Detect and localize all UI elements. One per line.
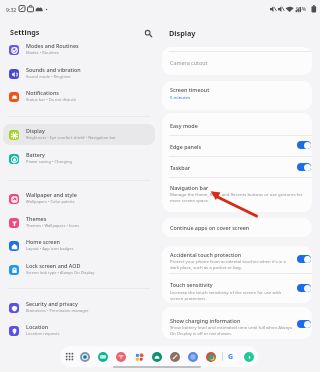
- staticText: Manage the Home, Back, and Recents butto…: [170, 191, 308, 203]
- button[interactable]: Google: [226, 352, 236, 362]
- staticText: Power saving • Charging: [26, 159, 72, 164]
- staticText: Brightness • Eye comfort shield • Naviga…: [26, 135, 116, 140]
- button[interactable]: App 7: [188, 352, 198, 362]
- staticText: 93%: [296, 6, 306, 13]
- staticText: 5 minutes: [170, 94, 191, 100]
- staticText: Security and privacy: [26, 300, 78, 307]
- staticText: Home screen: [26, 238, 60, 245]
- button[interactable]: Battery: [3, 148, 155, 169]
- staticText: Touch sensitivity: [170, 281, 213, 288]
- staticText: Display: [169, 28, 196, 38]
- staticText: Battery: [26, 151, 45, 158]
- button[interactable]: Modes and Routines: [3, 39, 155, 60]
- button[interactable]: App 5: [152, 352, 162, 362]
- staticText: Display: [26, 127, 45, 134]
- staticText: Notifications: [26, 89, 59, 96]
- staticText: Sound mode • Ringtone: [26, 74, 71, 79]
- staticText: Settings: [10, 27, 40, 37]
- staticText: Themes • Wallpapers • Icons: [26, 223, 80, 228]
- button[interactable]: App 6: [170, 352, 180, 362]
- staticText: Edge panels: [170, 143, 202, 150]
- staticText: Easy mode: [170, 122, 198, 129]
- staticText: Modes and Routines: [26, 42, 79, 49]
- staticText: Location: [26, 323, 49, 330]
- button[interactable]: Search: [140, 25, 156, 41]
- button[interactable]: Home screen: [3, 235, 155, 256]
- button[interactable]: Easy mode: [162, 113, 312, 212]
- staticText: Screen lock type • Always On Display: [26, 270, 95, 275]
- button[interactable]: Display: [3, 124, 155, 145]
- staticText: Show battery level and estimated time un…: [170, 324, 294, 336]
- staticText: Sounds and vibration: [26, 66, 81, 73]
- staticText: 9:32: [6, 6, 17, 13]
- button[interactable]: Wallpaper and style: [3, 188, 155, 209]
- button[interactable]: Screen timeout: [162, 81, 312, 110]
- button[interactable]: App 4: [134, 352, 144, 362]
- button[interactable]: Lock screen and AOD: [3, 259, 155, 280]
- button[interactable]: Location: [3, 320, 155, 341]
- staticText: Taskbar: [170, 164, 191, 171]
- button[interactable]: Downloads: [244, 352, 254, 362]
- button[interactable]: Show charging information: [162, 307, 312, 339]
- button[interactable]: Toggle: [297, 255, 311, 263]
- button[interactable]: App 2: [98, 352, 108, 362]
- staticText: Biometrics • Permission manager: [26, 308, 89, 313]
- staticText: Screen timeout: [170, 86, 210, 93]
- button[interactable]: Continue apps on cover screen: [162, 218, 312, 237]
- staticText: Camera cutout: [170, 59, 208, 66]
- button[interactable]: Toggle: [297, 284, 311, 292]
- staticText: Layout • App icon badges: [26, 246, 74, 251]
- button[interactable]: Notifications: [3, 86, 155, 107]
- staticText: Show charging information: [170, 317, 241, 324]
- button[interactable]: Toggle: [297, 141, 311, 149]
- staticText: Accidental touch protection: [170, 251, 242, 258]
- button[interactable]: Security and privacy: [3, 297, 155, 318]
- button[interactable]: App 8: [206, 352, 216, 362]
- staticText: Location requests: [26, 331, 60, 336]
- staticText: Increase the touch sensitivity of the sc…: [170, 289, 294, 301]
- button[interactable]: Toggle: [297, 163, 311, 171]
- staticText: Status bar • Do not disturb: [26, 97, 76, 102]
- staticText: Wallpaper and style: [26, 191, 77, 198]
- button[interactable]: Sounds and vibration: [3, 63, 155, 84]
- button[interactable]: Toggle: [297, 320, 311, 328]
- staticText: Modes • Routines: [26, 50, 59, 55]
- button[interactable]: App 3: [116, 352, 126, 362]
- staticText: Navigation bar: [170, 184, 209, 191]
- staticText: Protect your phone from accidental touch…: [170, 258, 294, 270]
- staticText: Wallpapers • Color palette: [26, 199, 75, 204]
- button[interactable]: Accidental touch protection: [162, 246, 312, 303]
- staticText: Lock screen and AOD: [26, 262, 81, 269]
- staticText: Continue apps on cover screen: [170, 224, 250, 231]
- button[interactable]: Themes: [3, 212, 155, 233]
- button[interactable]: App 1: [80, 352, 90, 362]
- staticText: Themes: [26, 215, 47, 222]
- staticText: G: [228, 352, 234, 362]
- button[interactable]: Camera cutout: [162, 47, 312, 75]
- button[interactable]: All apps: [63, 350, 76, 363]
